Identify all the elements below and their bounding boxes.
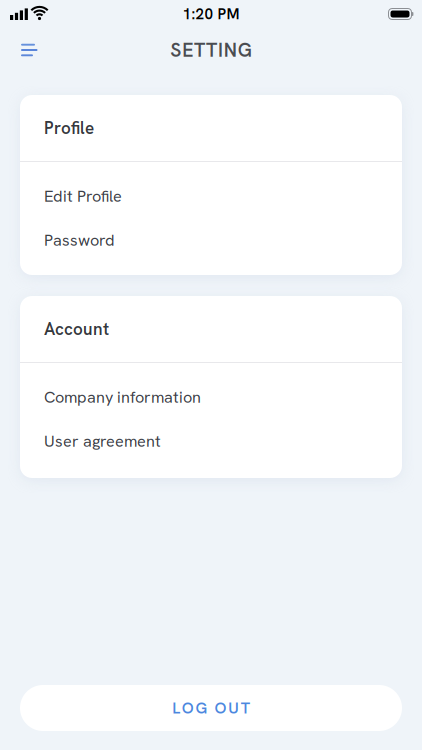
- staticText: T: [241, 698, 250, 718]
- button[interactable]: Password: [20, 218, 402, 262]
- button[interactable]: Edit Profile: [20, 174, 402, 218]
- staticText: Profile: [44, 117, 94, 139]
- button[interactable]: Menu: [17, 36, 41, 64]
- staticText: O: [215, 698, 227, 718]
- staticText: L: [172, 698, 180, 718]
- staticText: User agreement: [44, 430, 161, 452]
- staticText: T: [206, 37, 217, 63]
- button[interactable]: Company information: [20, 375, 402, 419]
- staticText: E: [182, 37, 193, 63]
- staticText: I: [218, 37, 223, 63]
- staticText: O: [182, 698, 194, 718]
- staticText: U: [228, 698, 239, 718]
- button[interactable]: User agreement: [20, 419, 402, 463]
- staticText: 1:20 PM: [182, 4, 239, 24]
- button[interactable]: L: [20, 685, 402, 731]
- staticText: G: [238, 37, 252, 63]
- staticText: Password: [44, 229, 115, 251]
- staticText: T: [194, 37, 205, 63]
- staticText: S: [170, 37, 181, 63]
- staticText: Edit Profile: [44, 185, 122, 207]
- staticText: N: [224, 37, 237, 63]
- staticText: G: [195, 698, 207, 718]
- staticText: Company information: [44, 386, 201, 408]
- staticText: Account: [44, 318, 109, 340]
